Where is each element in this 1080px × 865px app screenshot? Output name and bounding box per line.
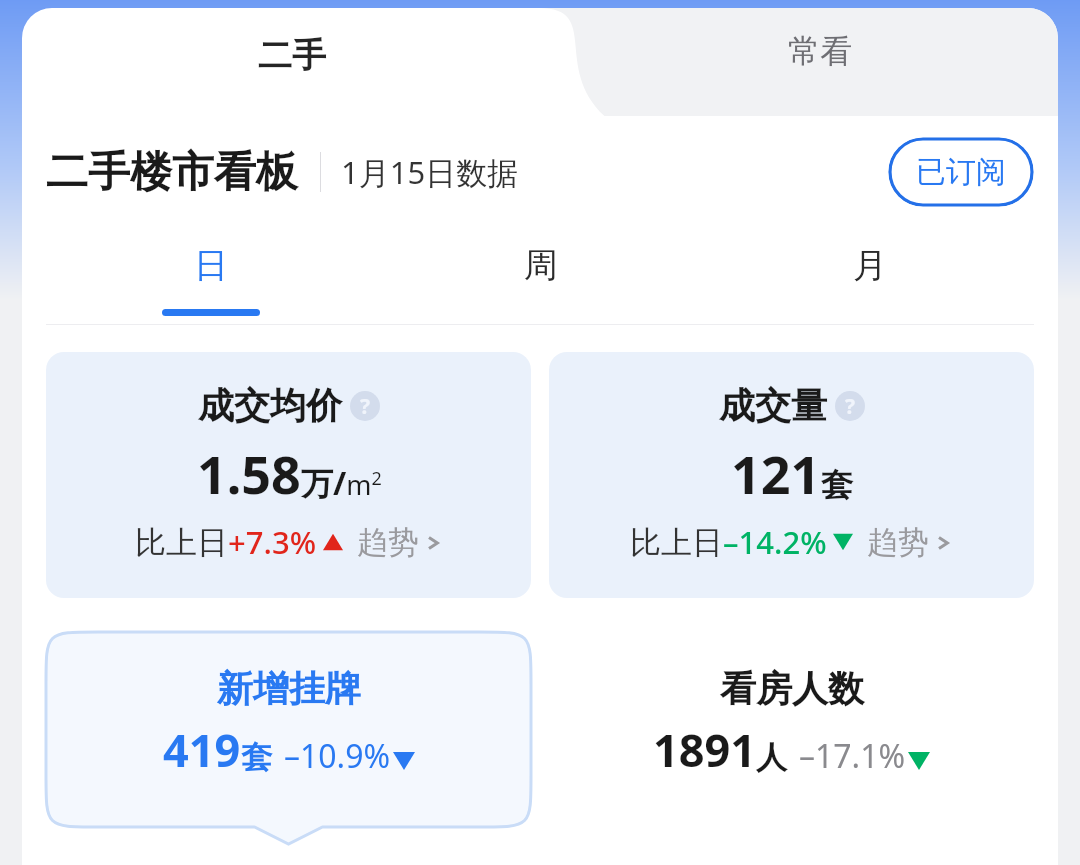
staticText: 1.58: [197, 438, 301, 509]
button[interactable]: 周: [376, 228, 705, 325]
staticText: ?: [845, 392, 856, 421]
staticText: 已订阅: [916, 153, 1006, 191]
staticText: 趋势: [867, 523, 929, 562]
staticText: 419: [163, 719, 241, 780]
button[interactable]: 日: [46, 228, 376, 325]
staticText: 121: [731, 438, 821, 509]
staticText: 二手: [258, 34, 326, 77]
button[interactable]: [46, 632, 531, 844]
staticText: 万/m2: [301, 461, 382, 505]
staticText: 新增挂牌: [217, 666, 361, 711]
staticText: 周: [524, 244, 558, 287]
staticText: 1月15日数据: [341, 151, 519, 193]
staticText: 比上日: [630, 523, 723, 562]
button[interactable]: 月: [705, 228, 1034, 325]
button[interactable]: 成交量: [549, 352, 1034, 598]
button[interactable]: 说明: [835, 391, 865, 421]
staticText: 套: [821, 465, 853, 505]
staticText: 1891: [653, 719, 756, 780]
button[interactable]: 成交均价: [46, 352, 531, 598]
staticText: 成交均价: [198, 383, 342, 428]
staticText: 二手楼市看板: [46, 146, 298, 199]
button[interactable]: 说明: [350, 391, 380, 421]
staticText: 比上日: [135, 523, 228, 562]
button[interactable]: 已订阅: [888, 137, 1034, 207]
button[interactable]: [549, 632, 1034, 844]
staticText: 看房人数: [720, 666, 864, 711]
button[interactable]: 趋势: [357, 523, 443, 562]
staticText: 日: [194, 244, 228, 287]
staticText: –17.1%: [799, 734, 906, 778]
button[interactable]: 二手: [22, 8, 561, 116]
button[interactable]: 常看: [582, 8, 1058, 116]
staticText: 套: [241, 738, 272, 777]
staticText: 月: [853, 244, 887, 287]
staticText: –14.2%: [723, 521, 827, 563]
staticText: 趋势: [357, 523, 419, 562]
staticText: 常看: [788, 31, 852, 71]
staticText: –10.9%: [284, 734, 391, 778]
staticText: ?: [360, 392, 371, 421]
staticText: 成交量: [719, 383, 827, 428]
button[interactable]: 趋势: [867, 523, 953, 562]
staticText: 人: [756, 738, 787, 777]
staticText: +7.3%: [228, 521, 317, 563]
